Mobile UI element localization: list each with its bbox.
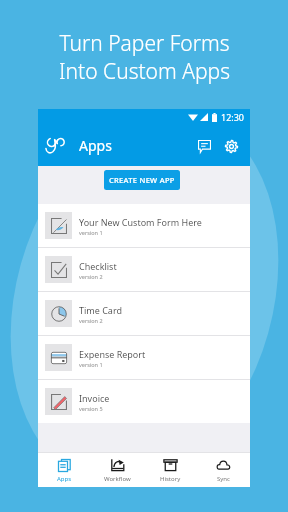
- button[interactable]: Time Card: [38, 292, 250, 335]
- button[interactable]: Your New Custom Form Here: [38, 204, 250, 247]
- staticText: 12:30: [221, 111, 245, 123]
- button[interactable]: GoFormz home: [46, 136, 66, 156]
- staticText: Turn Paper Forms Into Custom Apps: [59, 29, 230, 85]
- button[interactable]: CREATE NEW APP: [104, 170, 180, 190]
- button[interactable]: Messages: [193, 131, 215, 161]
- staticText: Apps: [57, 475, 72, 483]
- staticText: version 2: [79, 273, 103, 280]
- staticText: Checklist: [79, 260, 117, 272]
- staticText: version 2: [79, 317, 103, 324]
- staticText: History: [160, 475, 181, 483]
- staticText: CREATE NEW APP: [109, 175, 175, 185]
- staticText: Time Card: [79, 304, 122, 316]
- button[interactable]: Settings: [220, 131, 242, 161]
- staticText: Workflow: [104, 475, 131, 483]
- button[interactable]: Apps: [38, 453, 91, 487]
- staticText: Apps: [79, 136, 112, 155]
- button[interactable]: Workflow: [91, 453, 144, 487]
- staticText: Sync: [217, 475, 230, 483]
- staticText: version 5: [79, 405, 103, 412]
- staticText: Expense Report: [79, 348, 146, 360]
- button[interactable]: Invoice: [38, 380, 250, 423]
- button[interactable]: Checklist: [38, 248, 250, 291]
- staticText: version 1: [79, 229, 103, 236]
- button[interactable]: Sync: [197, 453, 250, 487]
- staticText: Your New Custom Form Here: [79, 216, 202, 228]
- button[interactable]: Expense Report: [38, 336, 250, 379]
- staticText: version 1: [79, 361, 103, 368]
- button[interactable]: History: [144, 453, 197, 487]
- staticText: Invoice: [79, 392, 110, 404]
